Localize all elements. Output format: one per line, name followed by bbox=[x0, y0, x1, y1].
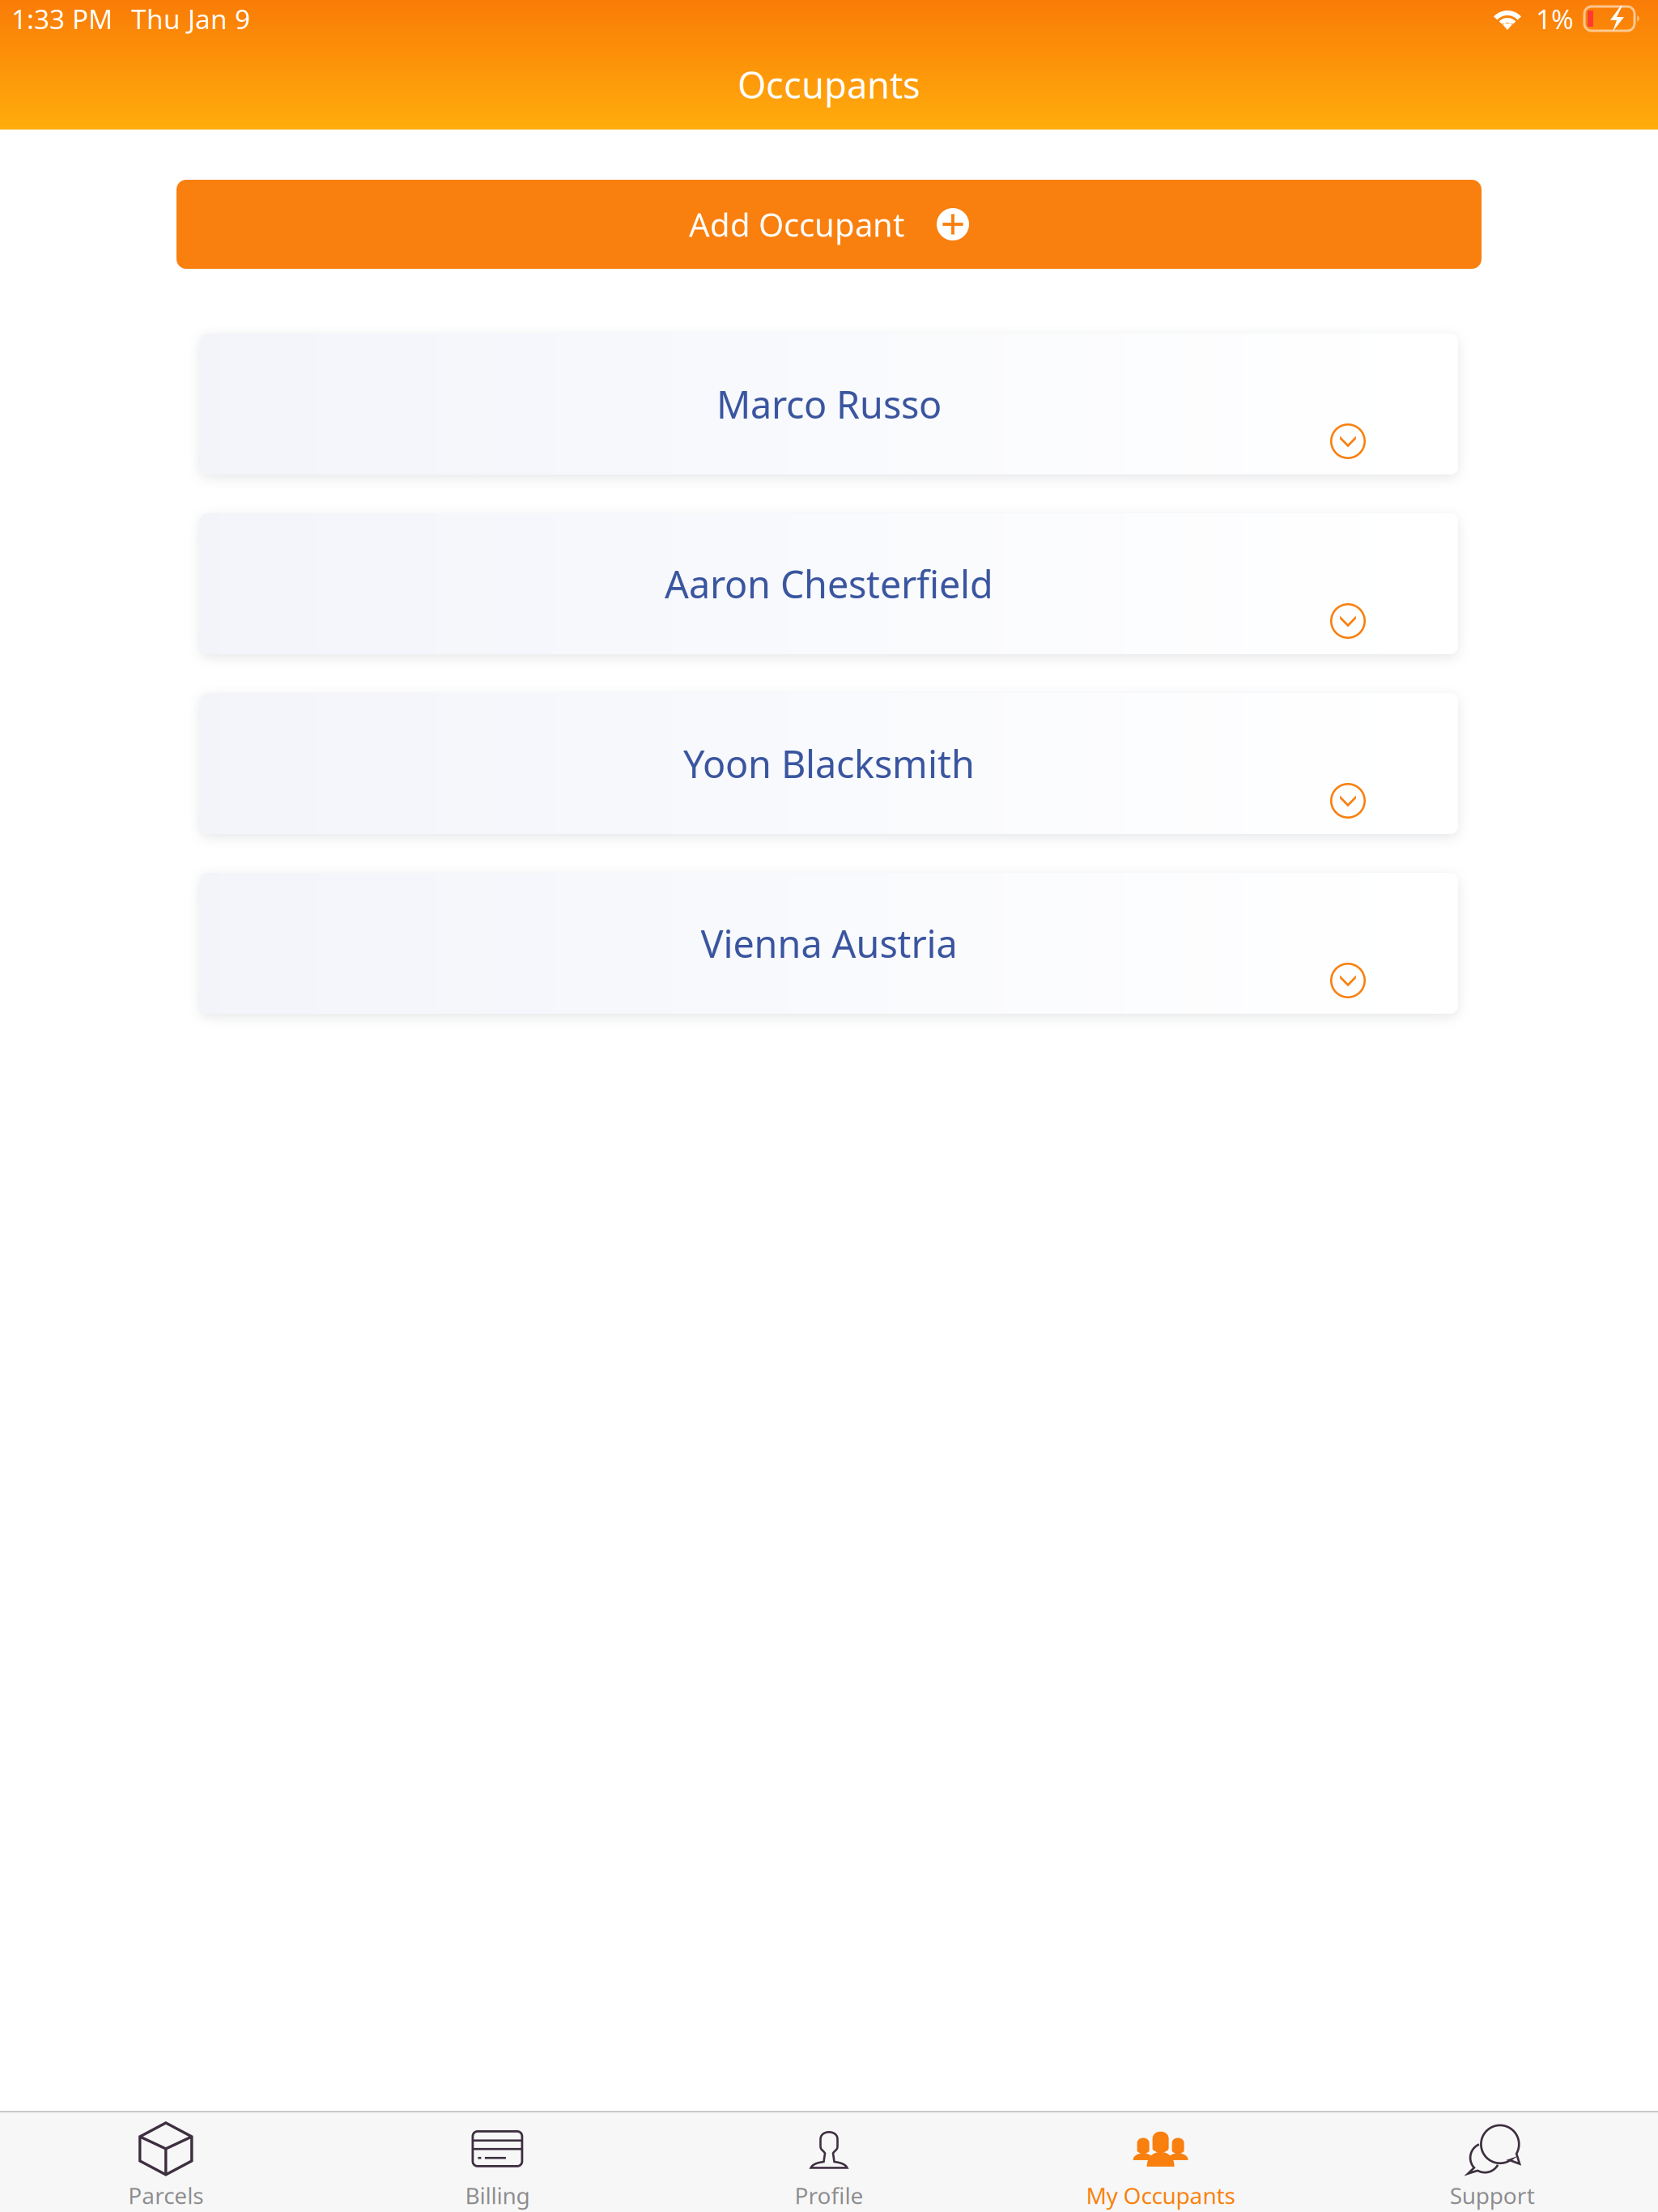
staticText: Profile bbox=[795, 2180, 863, 2210]
staticText: 1% bbox=[1536, 1, 1574, 37]
button[interactable]: Yoon Blacksmith bbox=[200, 693, 1458, 834]
staticText: Billing bbox=[465, 2180, 530, 2210]
button[interactable]: Profile bbox=[663, 2112, 995, 2212]
staticText: Vienna Austria bbox=[701, 918, 957, 968]
button[interactable]: My Occupants bbox=[995, 2112, 1326, 2212]
staticText: Marco Russo bbox=[716, 379, 942, 429]
staticText: Yoon Blacksmith bbox=[683, 738, 975, 789]
button[interactable]: Vienna Austria bbox=[200, 873, 1458, 1014]
staticText: Thu Jan 9 bbox=[131, 1, 250, 37]
button[interactable]: Parcels bbox=[0, 2112, 332, 2212]
button[interactable]: Support bbox=[1326, 2112, 1658, 2212]
staticText: Parcels bbox=[128, 2180, 203, 2210]
button[interactable]: Add Occupant bbox=[176, 180, 1482, 269]
staticText: Aaron Chesterfield bbox=[665, 559, 993, 609]
staticText: Occupants bbox=[738, 60, 920, 109]
staticText: Support bbox=[1450, 2180, 1535, 2210]
staticText: 1:33 PM bbox=[11, 1, 113, 37]
staticText: Add Occupant bbox=[689, 203, 904, 246]
staticText: My Occupants bbox=[1086, 2180, 1235, 2210]
button[interactable]: Aaron Chesterfield bbox=[200, 513, 1458, 654]
button[interactable]: Billing bbox=[332, 2112, 663, 2212]
button[interactable]: Marco Russo bbox=[200, 334, 1458, 474]
